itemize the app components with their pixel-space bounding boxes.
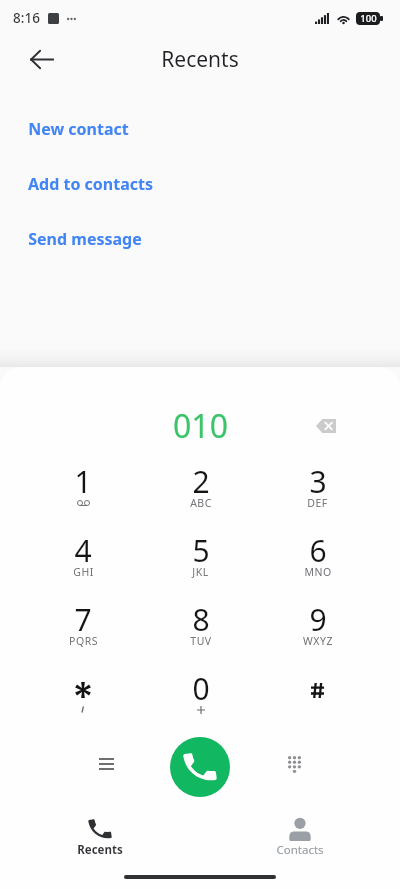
staticText: Recents bbox=[161, 45, 239, 74]
button[interactable]: 8 bbox=[142, 599, 259, 668]
staticText: Contacts bbox=[276, 842, 324, 858]
button[interactable]: 6 bbox=[259, 530, 376, 599]
staticText: 7 bbox=[74, 599, 92, 633]
button[interactable]: 9 bbox=[259, 599, 376, 668]
button[interactable]: 2 bbox=[142, 461, 259, 530]
staticText: ABC bbox=[190, 496, 212, 510]
button[interactable]: 5 bbox=[142, 530, 259, 599]
staticText: 100 bbox=[360, 12, 377, 25]
staticText: Send message bbox=[28, 228, 142, 250]
button[interactable]: Contacts bbox=[200, 810, 400, 868]
staticText: 3 bbox=[309, 461, 327, 495]
button[interactable]: Menu bbox=[85, 743, 127, 785]
button[interactable]: Dialpad bbox=[273, 743, 315, 785]
staticText: 8 bbox=[192, 599, 210, 633]
staticText: 1 bbox=[74, 461, 92, 495]
button[interactable]: 0 bbox=[142, 668, 259, 737]
staticText: 9 bbox=[309, 599, 327, 633]
staticText: 4 bbox=[74, 530, 92, 564]
button[interactable]: Recents bbox=[0, 810, 200, 868]
button[interactable] bbox=[259, 668, 376, 737]
button[interactable]: Back bbox=[19, 37, 63, 81]
staticText: PQRS bbox=[69, 634, 98, 648]
button[interactable]: Add to contacts bbox=[0, 162, 400, 206]
staticText: JKL bbox=[192, 565, 209, 579]
staticText: Add to contacts bbox=[28, 173, 153, 195]
button[interactable]: 3 bbox=[259, 461, 376, 530]
button[interactable]: 1 bbox=[24, 461, 142, 530]
button[interactable]: Call bbox=[170, 737, 230, 797]
staticText: Recents bbox=[77, 842, 123, 858]
staticText: 2 bbox=[192, 461, 210, 495]
staticText: GHI bbox=[73, 565, 94, 579]
button[interactable]: Send message bbox=[0, 217, 400, 261]
button[interactable]: New contact bbox=[0, 107, 400, 151]
staticText: MNO bbox=[304, 565, 332, 579]
staticText: 6 bbox=[309, 530, 327, 564]
staticText: DEF bbox=[307, 496, 328, 510]
staticText: New contact bbox=[28, 118, 129, 140]
staticText: 5 bbox=[192, 530, 210, 564]
staticText: WXYZ bbox=[303, 634, 333, 648]
staticText: 010 bbox=[173, 404, 228, 448]
button[interactable]: Backspace bbox=[306, 406, 346, 446]
staticText: 8:16 bbox=[13, 9, 40, 27]
button[interactable]: 4 bbox=[24, 530, 142, 599]
staticText: 0 bbox=[192, 668, 210, 702]
button[interactable]: 7 bbox=[24, 599, 142, 668]
button[interactable] bbox=[24, 668, 142, 737]
staticText: TUV bbox=[190, 634, 212, 648]
